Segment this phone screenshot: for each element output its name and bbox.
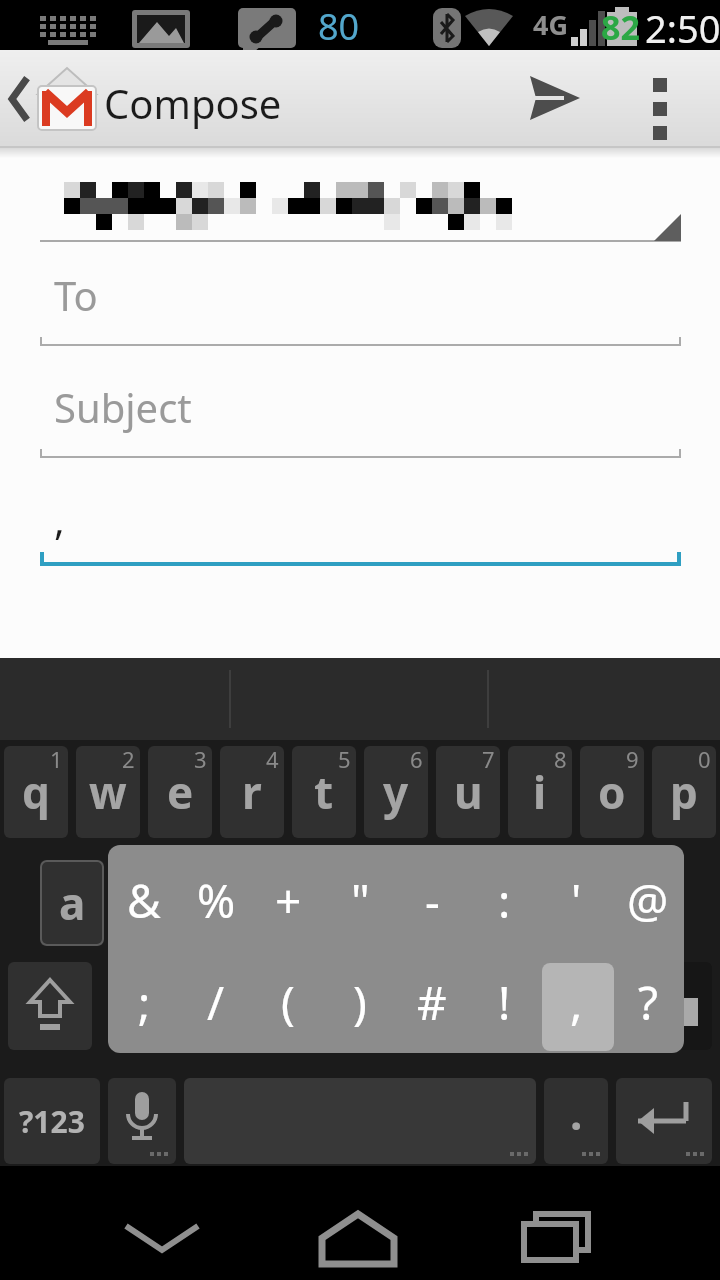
staticText: 1 [50,746,63,774]
staticText: 3 [194,746,207,774]
button[interactable]: , [540,957,612,1047]
staticText: , [54,492,65,546]
button[interactable]: y [364,746,428,838]
button[interactable]: ! [468,957,540,1047]
staticText: r [242,762,262,822]
button[interactable] [102,1166,222,1280]
button[interactable]: f [256,860,320,946]
staticText: l [641,873,655,933]
button[interactable]: t [292,746,356,838]
button[interactable]: w [76,746,140,838]
button[interactable]: i [508,746,572,838]
staticText: g [346,873,374,933]
staticText: 9 [626,746,639,774]
staticText: t [314,762,334,822]
staticText: + [275,869,302,932]
button[interactable]: a [40,860,104,946]
staticText: ( [281,971,295,1034]
button[interactable]: ) [324,957,396,1047]
staticText: ?123 [19,1101,85,1142]
staticText: 5 [338,746,351,774]
staticText: w [89,762,127,822]
staticText: k [562,873,590,933]
staticText: e [167,762,194,822]
button[interactable]: r [220,746,284,838]
button[interactable]: ; [108,957,180,1047]
button[interactable]: j [472,860,536,946]
button[interactable]: u [436,746,500,838]
staticText: Compose [104,76,282,130]
button[interactable]: - [396,855,468,945]
button[interactable]: p [652,746,716,838]
button[interactable]: ( [252,957,324,1047]
staticText: 7 [482,746,495,774]
staticText: y [383,762,409,822]
button[interactable]: g [328,860,392,946]
button[interactable]: h [400,860,464,946]
button[interactable]: e [148,746,212,838]
button[interactable]: " [324,855,396,945]
button[interactable]: / [180,957,252,1047]
staticText: Subject [54,380,192,434]
button[interactable]: ? [612,957,684,1047]
button[interactable]: q [4,746,68,838]
button[interactable]: Subject [40,370,681,458]
staticText: p [670,762,698,822]
button[interactable] [298,1166,418,1280]
staticText: i [533,762,547,822]
button[interactable]: , [40,482,681,566]
button[interactable]: k [544,860,608,946]
staticText: % [197,869,236,932]
button[interactable] [108,1078,176,1164]
button[interactable]: ' [540,855,612,945]
staticText: f [279,873,297,933]
button[interactable]: . [544,1078,608,1164]
staticText: 4G [533,6,568,43]
button[interactable]: # [396,957,468,1047]
button[interactable]: : [468,855,540,945]
staticText: 4 [266,746,279,774]
staticText: ! [498,971,511,1034]
button[interactable]: @ [612,855,684,945]
button[interactable] [40,168,681,243]
staticText: u [454,762,483,822]
staticText: / [207,971,225,1034]
button[interactable]: o [580,746,644,838]
staticText: 0 [698,746,711,774]
staticText: , [570,971,583,1034]
button[interactable]: To [40,258,681,346]
staticText: ' [571,869,582,932]
button[interactable] [604,962,712,1050]
staticText: q [22,762,50,822]
staticText: To [54,268,98,322]
staticText: 2:50 [645,2,720,52]
staticText: h [418,873,447,933]
button[interactable] [506,50,602,148]
button[interactable]: s [112,860,176,946]
staticText: # [417,971,447,1034]
staticText: 6 [410,746,423,774]
staticText: 80 [318,2,360,51]
staticText: . [570,1083,583,1143]
button[interactable] [616,1078,712,1164]
staticText: ; [138,971,151,1034]
button[interactable]: ?123 [4,1078,100,1164]
button[interactable] [624,50,696,148]
button[interactable]: % [180,855,252,945]
staticText: & [127,869,161,932]
button[interactable] [498,1166,618,1280]
button[interactable]: d [184,860,248,946]
button[interactable]: + [252,855,324,945]
button[interactable]: & [108,855,180,945]
staticText: 8 [554,746,567,774]
staticText: ? [638,971,658,1034]
button[interactable] [8,962,92,1050]
staticText: j [497,873,511,933]
staticText: @ [627,869,669,932]
button[interactable]: l [616,860,680,946]
staticText: : [498,869,511,932]
button[interactable] [0,50,36,148]
staticText: ) [353,971,367,1034]
staticText: 2 [122,746,135,774]
